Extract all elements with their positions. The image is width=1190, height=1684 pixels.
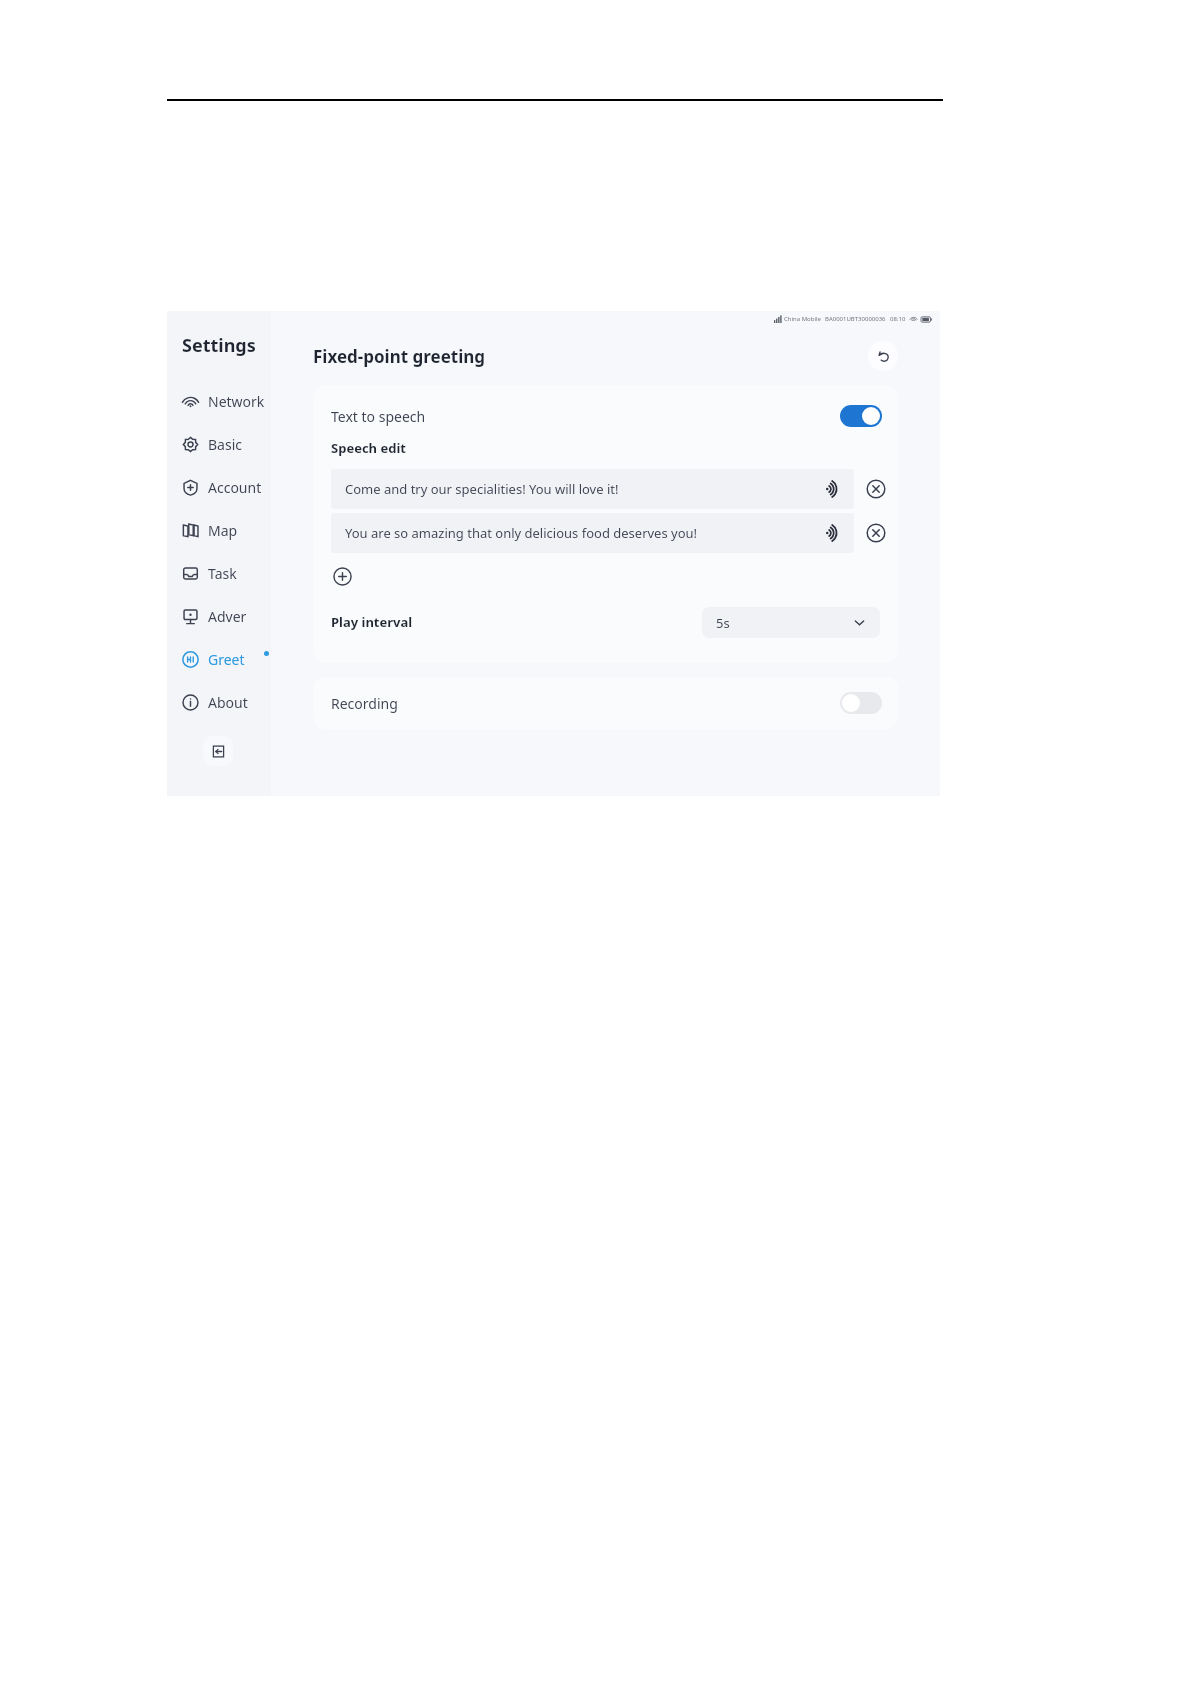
button[interactable]: Delete	[854, 469, 898, 509]
staticText: Text to speech	[331, 407, 426, 426]
staticText: Map	[208, 521, 238, 540]
staticText: About	[208, 693, 248, 712]
staticText: Greet	[208, 650, 245, 669]
button[interactable]: Back	[868, 341, 898, 371]
button[interactable]: Map	[167, 509, 271, 552]
button[interactable]: Text to speech	[313, 399, 898, 433]
button[interactable]: Account	[167, 466, 271, 509]
staticText: Fixed-point greeting	[313, 345, 486, 368]
button[interactable]: 5s	[702, 607, 880, 638]
staticText: Account	[208, 478, 262, 497]
button[interactable]: Task	[167, 552, 271, 595]
button[interactable]: Greet	[167, 638, 271, 681]
button[interactable]: Collapse	[203, 736, 233, 766]
staticText: Speech edit	[331, 439, 406, 457]
button[interactable]: Off	[840, 692, 882, 714]
staticText: Adver	[208, 607, 247, 626]
button[interactable]: Play	[824, 480, 842, 498]
button[interactable]: You are so amazing that only delicious f…	[331, 513, 854, 553]
button[interactable]: About	[167, 681, 271, 724]
staticText: Come and try our specialities! You will …	[345, 480, 619, 498]
button[interactable]: Add speech	[331, 565, 353, 587]
staticText: 08:10	[890, 315, 906, 323]
button[interactable]: Delete	[854, 513, 898, 553]
staticText: BA0001UBT30000036	[825, 315, 886, 323]
staticText: Recording	[331, 694, 398, 713]
button[interactable]: Basic	[167, 423, 271, 466]
button[interactable]: On	[840, 405, 882, 427]
button[interactable]: Come and try our specialities! You will …	[331, 469, 854, 509]
staticText: Play interval	[331, 613, 413, 631]
staticText: Network	[208, 392, 265, 411]
staticText: You are so amazing that only delicious f…	[345, 524, 698, 542]
staticText: Task	[208, 564, 237, 583]
staticText: China Mobile	[784, 315, 821, 323]
staticText: Settings	[182, 333, 256, 358]
button[interactable]: Adver	[167, 595, 271, 638]
staticText: 5s	[716, 614, 730, 632]
button[interactable]: Network	[167, 380, 271, 423]
staticText: Basic	[208, 435, 242, 454]
button[interactable]: Recording	[313, 677, 898, 729]
button[interactable]: Play	[824, 524, 842, 542]
